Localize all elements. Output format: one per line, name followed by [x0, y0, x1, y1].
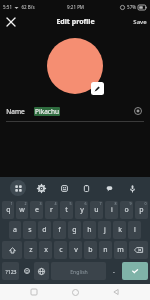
button[interactable]: Voice input — [124, 180, 140, 196]
button[interactable]: v — [69, 241, 82, 259]
staticText: i — [111, 205, 113, 215]
staticText: 5 — [69, 201, 72, 206]
button[interactable]: Home — [68, 285, 82, 299]
staticText: m — [117, 245, 124, 255]
staticText: 3 — [39, 201, 42, 206]
button[interactable]: English — [51, 262, 106, 280]
staticText: 9 — [129, 201, 132, 206]
staticText: 57% — [127, 4, 136, 10]
button[interactable]: Clipboard — [78, 180, 94, 196]
button[interactable]: Clear text — [132, 105, 144, 117]
button[interactable]: Close — [4, 15, 18, 29]
staticText: r — [50, 205, 53, 215]
staticText: 5:51 — [3, 4, 12, 10]
staticText: n — [103, 245, 108, 255]
staticText: f — [58, 225, 61, 235]
button[interactable]: Back — [109, 285, 123, 299]
button[interactable]: Change language — [34, 262, 49, 280]
button[interactable]: q — [2, 201, 14, 219]
staticText: . — [113, 266, 115, 276]
button[interactable]: Profile photo — [47, 38, 103, 94]
button[interactable]: Messages — [101, 180, 117, 196]
button[interactable]: ?123 — [2, 262, 19, 280]
staticText: o — [124, 205, 129, 215]
button[interactable]: y — [75, 201, 88, 219]
button[interactable]: h — [83, 221, 96, 239]
staticText: 7 — [99, 201, 102, 206]
button[interactable]: s — [23, 221, 36, 239]
staticText: 6 — [84, 201, 87, 206]
button[interactable]: Emoji — [21, 262, 32, 280]
staticText: 9:21 PM — [67, 4, 84, 10]
button[interactable]: Backspace — [129, 241, 148, 259]
button[interactable]: Save — [133, 18, 147, 26]
button[interactable]: d — [38, 221, 51, 239]
staticText: a — [13, 225, 17, 235]
button[interactable]: n — [99, 241, 112, 259]
staticText: w — [19, 205, 25, 215]
button[interactable]: m — [114, 241, 127, 259]
button[interactable]: Stickers — [56, 180, 72, 196]
staticText: d — [42, 225, 47, 235]
staticText: x — [44, 245, 48, 255]
button[interactable]: x — [39, 241, 52, 259]
staticText: s — [28, 225, 32, 235]
button[interactable]: c — [54, 241, 67, 259]
staticText: 8 — [114, 201, 117, 206]
button[interactable]: o — [120, 201, 133, 219]
staticText: Edit profile — [56, 17, 95, 27]
button[interactable]: e — [30, 201, 43, 219]
staticText: 1 — [10, 201, 13, 206]
button[interactable]: u — [90, 201, 103, 219]
staticText: c — [59, 245, 63, 255]
staticText: Pikachu — [35, 107, 59, 116]
staticText: e — [35, 205, 39, 215]
button[interactable]: Settings — [33, 180, 49, 196]
button[interactable]: l — [128, 221, 141, 239]
staticText: b — [88, 245, 93, 255]
staticText: j — [104, 225, 106, 235]
staticText: h — [87, 225, 92, 235]
staticText: k — [118, 225, 122, 235]
staticText: Name — [6, 107, 25, 116]
staticText: ?123 — [5, 268, 17, 275]
staticText: English — [70, 268, 88, 275]
button[interactable]: b — [84, 241, 97, 259]
button[interactable]: Change photo — [91, 82, 104, 95]
button[interactable]: r — [45, 201, 58, 219]
button[interactable]: Name — [0, 101, 150, 121]
button[interactable]: Enter — [122, 262, 148, 280]
button[interactable]: Recents — [27, 285, 41, 299]
button[interactable]: w — [16, 201, 28, 219]
staticText: y — [80, 205, 84, 215]
staticText: 4 — [54, 201, 57, 206]
staticText: v — [74, 245, 78, 255]
button[interactable]: Shift — [2, 241, 22, 259]
button[interactable]: g — [68, 221, 81, 239]
button[interactable]: f — [53, 221, 66, 239]
staticText: 0 — [144, 201, 147, 206]
staticText: z — [29, 245, 33, 255]
staticText: Save — [133, 18, 147, 26]
staticText: 62 B/s — [21, 4, 35, 10]
button[interactable]: j — [98, 221, 111, 239]
button[interactable]: t — [60, 201, 73, 219]
button[interactable]: i — [105, 201, 118, 219]
staticText: l — [134, 225, 136, 235]
button[interactable]: p — [135, 201, 148, 219]
staticText: 2 — [24, 201, 27, 206]
button[interactable]: Apps — [10, 180, 26, 196]
button[interactable]: z — [24, 241, 37, 259]
button[interactable]: k — [113, 221, 126, 239]
button[interactable]: a — [9, 221, 21, 239]
staticText: q — [6, 205, 11, 215]
staticText: g — [72, 225, 77, 235]
staticText: p — [139, 205, 144, 215]
staticText: t — [65, 205, 68, 215]
staticText: u — [94, 205, 99, 215]
button[interactable]: Period — [108, 262, 120, 280]
